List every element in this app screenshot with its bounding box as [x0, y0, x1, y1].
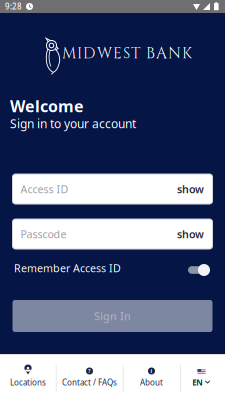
button[interactable]: show [177, 182, 204, 196]
staticText: show [177, 227, 204, 241]
staticText: i [150, 367, 152, 375]
staticText: 9:28 [5, 1, 22, 12]
staticText: Locations [10, 377, 46, 388]
button[interactable]: Remember Access ID [187, 262, 209, 276]
button[interactable]: Sign In [12, 300, 212, 332]
staticText: Sign in to your account [10, 115, 136, 131]
button[interactable]: About [123, 365, 180, 398]
staticText: Welcome [10, 95, 84, 117]
staticText: show [177, 182, 204, 196]
button[interactable]: Language: English [179, 365, 224, 398]
staticText: Access ID [20, 182, 68, 196]
staticText: Passcode [20, 227, 66, 241]
button[interactable]: Locations [0, 365, 56, 398]
staticText: ? [88, 367, 91, 375]
staticText: EN [192, 377, 203, 388]
button[interactable]: show [177, 227, 204, 241]
staticText: Contact / FAQs [62, 377, 117, 388]
staticText: About [140, 377, 163, 388]
staticText: M I D W E S T B A N K [62, 43, 192, 64]
staticText: Sign In [94, 309, 131, 323]
staticText: Remember Access ID [14, 261, 121, 275]
button[interactable]: Contact / FAQs [56, 365, 123, 398]
